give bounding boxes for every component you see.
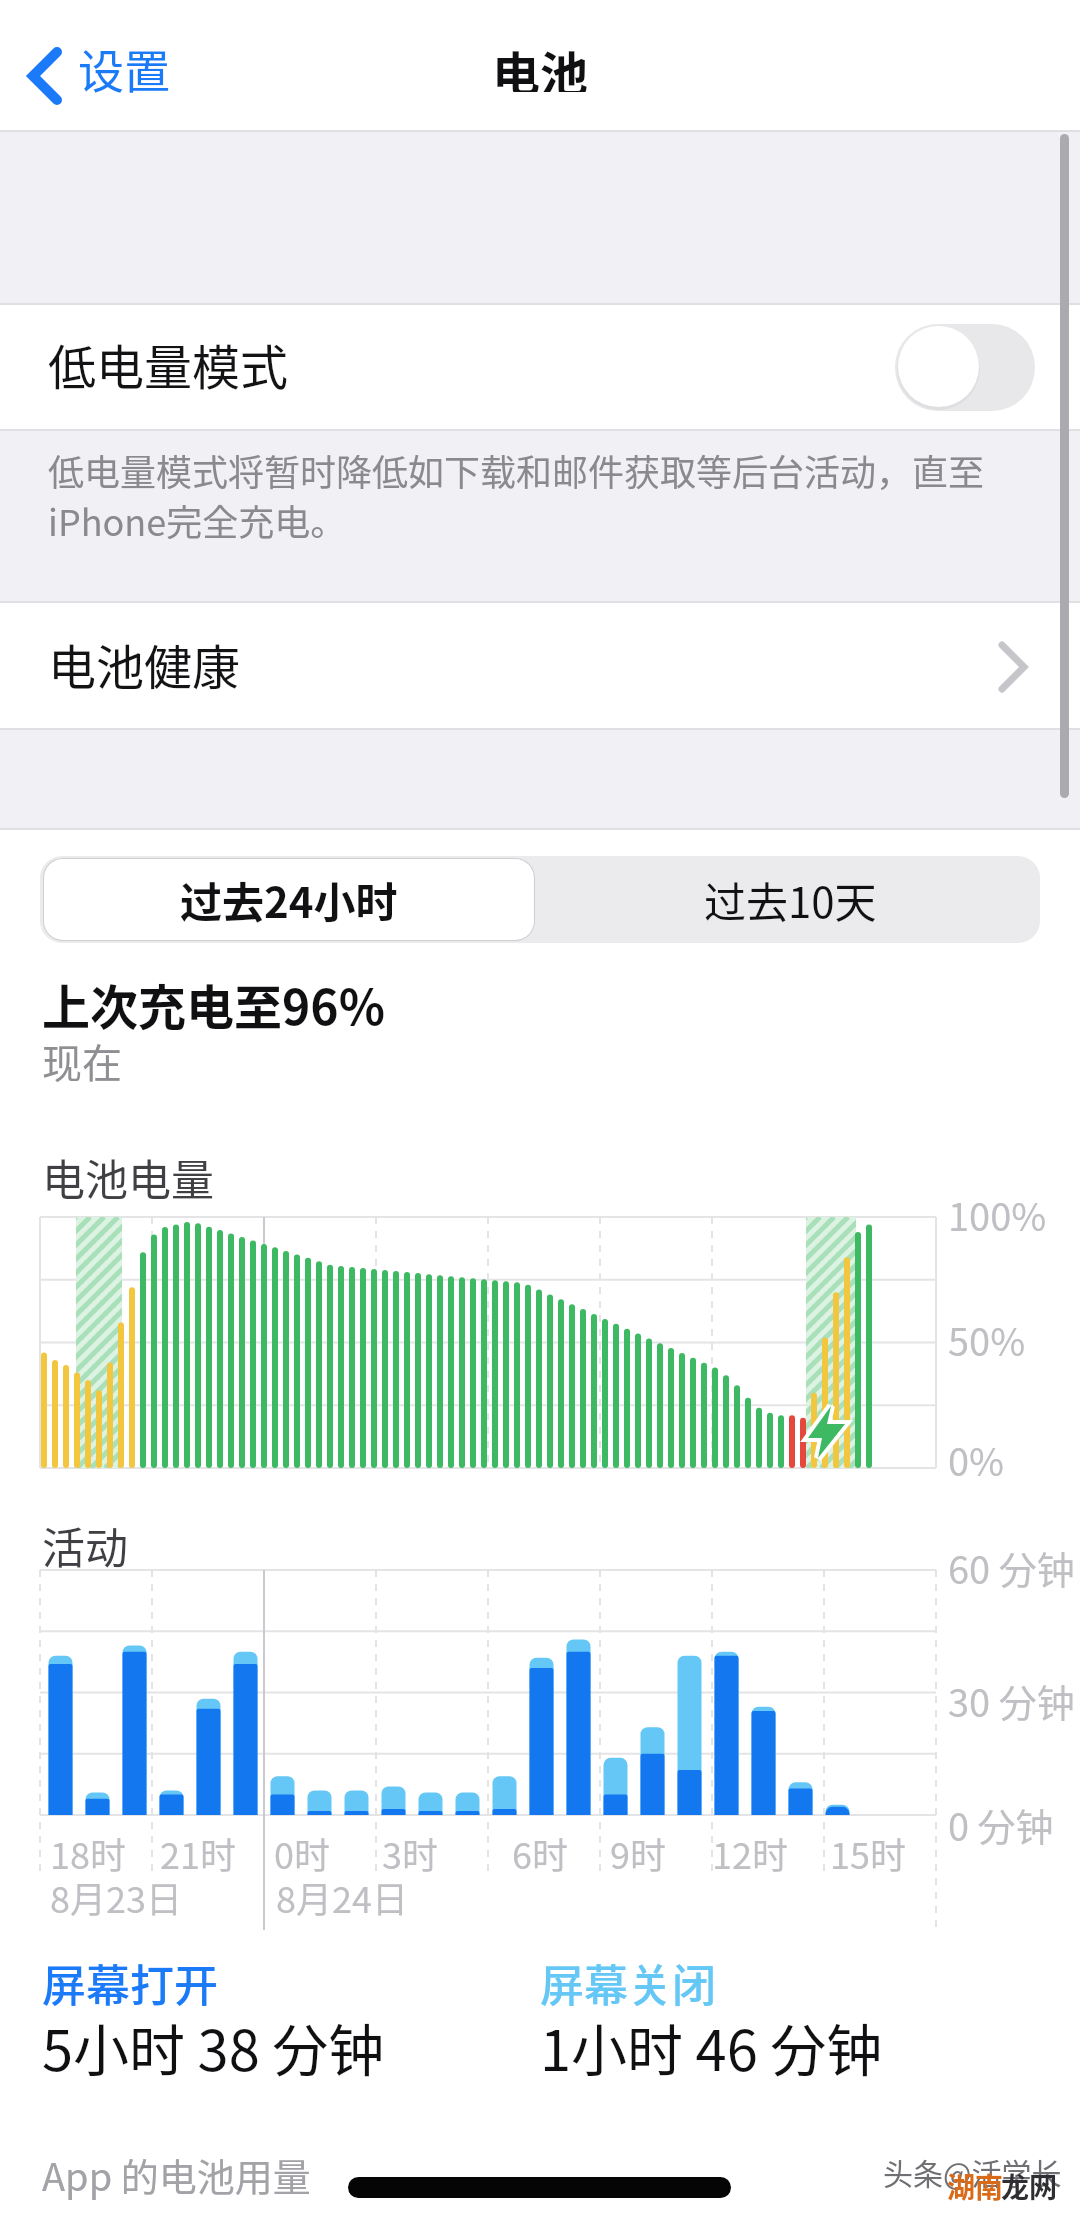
- staticText: 1小时 46 分钟: [540, 2006, 883, 2087]
- staticText: 低电量模式: [48, 329, 289, 399]
- staticText: 头条@活学长: [883, 2150, 1062, 2193]
- staticText: 过去24小时: [180, 869, 398, 930]
- staticText: App 的电池用量: [42, 2147, 311, 2202]
- staticText: 设置: [78, 35, 170, 102]
- staticText: 上次充电至96%: [42, 969, 385, 1039]
- staticText: 8月23日: [50, 1871, 182, 1923]
- staticText: 屏幕打开: [42, 1951, 218, 2015]
- staticText: 低电量模式将暂时降低如下载和邮件获取等后台活动，直至: [48, 444, 985, 496]
- staticText: 6时: [512, 1827, 568, 1879]
- staticText: 30 分钟: [948, 1673, 1075, 1728]
- staticText: 龙网: [1001, 2166, 1058, 2207]
- staticText: 12时: [712, 1827, 788, 1879]
- staticText: 21时: [160, 1827, 236, 1879]
- staticText: 过去10天: [704, 869, 877, 930]
- button[interactable]: [540, 859, 1040, 940]
- staticText: 屏幕关闭: [540, 1951, 716, 2015]
- staticText: 0时: [274, 1827, 330, 1879]
- button[interactable]: [0, 603, 1080, 729]
- staticText: 现在: [42, 1032, 122, 1090]
- staticText: 湖南: [947, 2166, 1004, 2207]
- staticText: 3时: [382, 1827, 438, 1879]
- staticText: 18时: [50, 1827, 126, 1879]
- staticText: 电池健康: [48, 629, 241, 699]
- staticText: 电池: [492, 36, 589, 92]
- staticText: 100%: [948, 1187, 1047, 1242]
- button[interactable]: [26, 40, 196, 112]
- staticText: 5小时 38 分钟: [42, 2006, 385, 2087]
- staticText: 0 分钟: [948, 1797, 1054, 1852]
- staticText: 8月24日: [276, 1871, 408, 1923]
- staticText: 活动: [42, 1514, 128, 1576]
- button[interactable]: [895, 324, 1035, 411]
- staticText: 0%: [948, 1432, 1005, 1487]
- button[interactable]: [0, 306, 1080, 429]
- staticText: 9时: [610, 1827, 666, 1879]
- button[interactable]: [44, 859, 534, 940]
- staticText: 15时: [830, 1827, 906, 1879]
- staticText: iPhone完全充电。: [48, 494, 347, 546]
- staticText: 60 分钟: [948, 1540, 1075, 1595]
- staticText: 电池电量: [42, 1146, 214, 1208]
- staticText: 50%: [948, 1312, 1026, 1367]
